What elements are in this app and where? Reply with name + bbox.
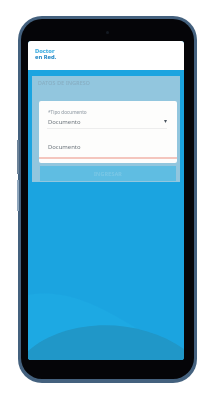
staticText: Doctor	[35, 47, 55, 55]
button[interactable]: Abrir lista tipo documento	[164, 120, 167, 123]
staticText: Documento	[48, 143, 81, 151]
staticText: *Tipo documento	[48, 109, 87, 115]
button[interactable]: INGRESAR	[40, 166, 176, 181]
staticText: en Red.	[35, 53, 57, 61]
staticText: Documento	[48, 118, 81, 126]
staticText: INGRESAR	[94, 170, 122, 177]
staticText: DATOS DE INGRESO	[38, 79, 91, 86]
